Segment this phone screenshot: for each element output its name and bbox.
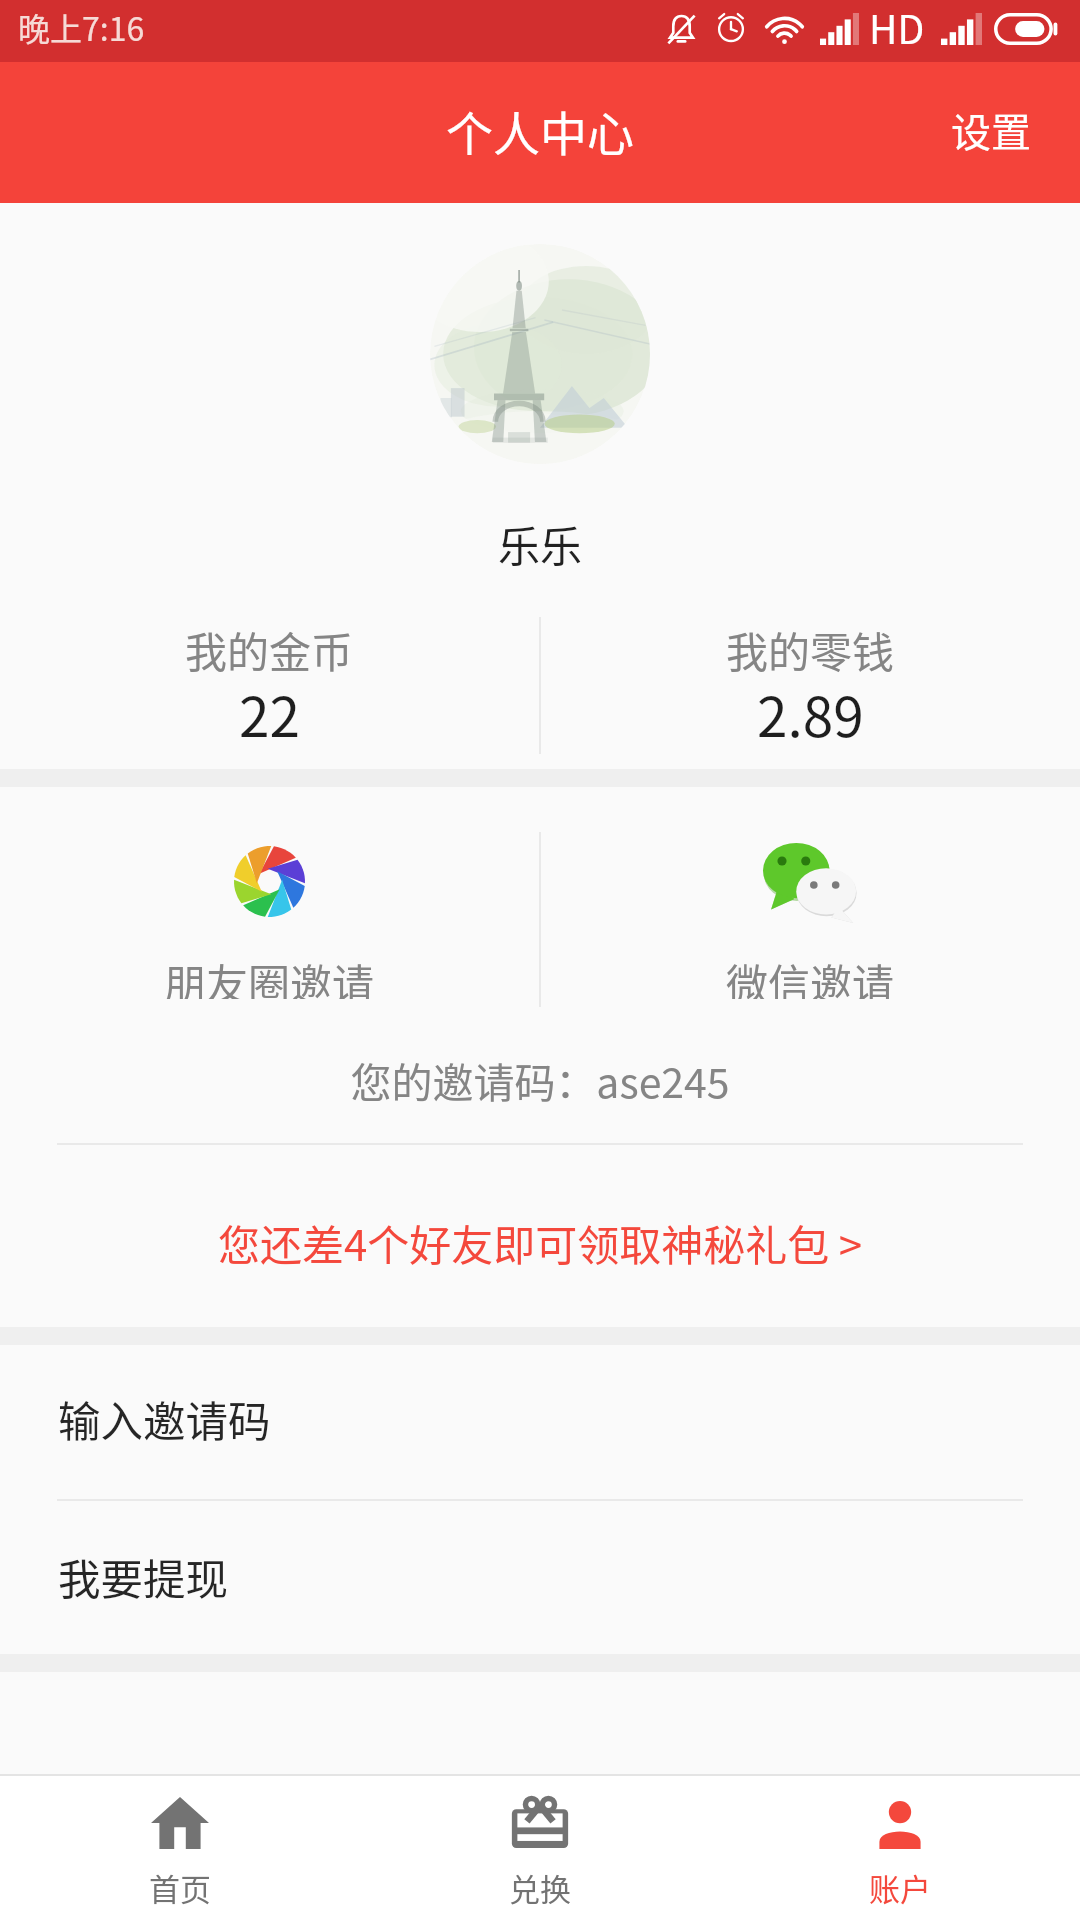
staticText: 微信邀请 <box>726 951 895 999</box>
staticText: 设置 <box>951 101 1031 159</box>
button[interactable]: 朋友圈邀请 <box>0 832 539 1015</box>
button[interactable]: 设置 <box>911 62 1080 203</box>
staticText: 2.89 <box>757 673 864 746</box>
staticText: HD <box>869 0 925 55</box>
staticText: 您还差4个好友即可领取神秘礼包 > <box>218 1212 863 1273</box>
staticText: 晚上7:16 <box>18 4 145 50</box>
button[interactable]: 首页 <box>0 1776 360 1920</box>
staticText: 乐乐 <box>498 513 583 574</box>
staticText: 首页 <box>149 1865 211 1910</box>
staticText: 账户 <box>869 1865 931 1910</box>
staticText: 个人中心 <box>446 96 634 164</box>
button[interactable]: 兑换 <box>360 1776 720 1920</box>
button[interactable]: 我的零钱 <box>541 622 1080 769</box>
button[interactable]: 我要提现 <box>0 1501 1080 1654</box>
button[interactable]: 您还差4个好友即可领取神秘礼包 > <box>0 1145 1080 1327</box>
button[interactable]: 我的金币 <box>0 622 539 769</box>
staticText: 兑换 <box>509 1865 571 1910</box>
staticText: 我的金币 <box>185 619 354 680</box>
button[interactable]: 账户 <box>720 1776 1080 1920</box>
staticText: 我要提现 <box>58 1546 229 1608</box>
staticText: 您的邀请码：ase245 <box>0 1050 1080 1109</box>
staticText: 22 <box>239 673 301 746</box>
staticText: 我的零钱 <box>726 619 895 680</box>
button[interactable]: 微信邀请 <box>541 832 1080 1015</box>
staticText: 朋友圈邀请 <box>164 951 375 999</box>
button[interactable]: 头像 <box>430 244 650 464</box>
button[interactable]: 输入邀请码 <box>0 1345 1080 1499</box>
staticText: 输入邀请码 <box>58 1388 271 1450</box>
